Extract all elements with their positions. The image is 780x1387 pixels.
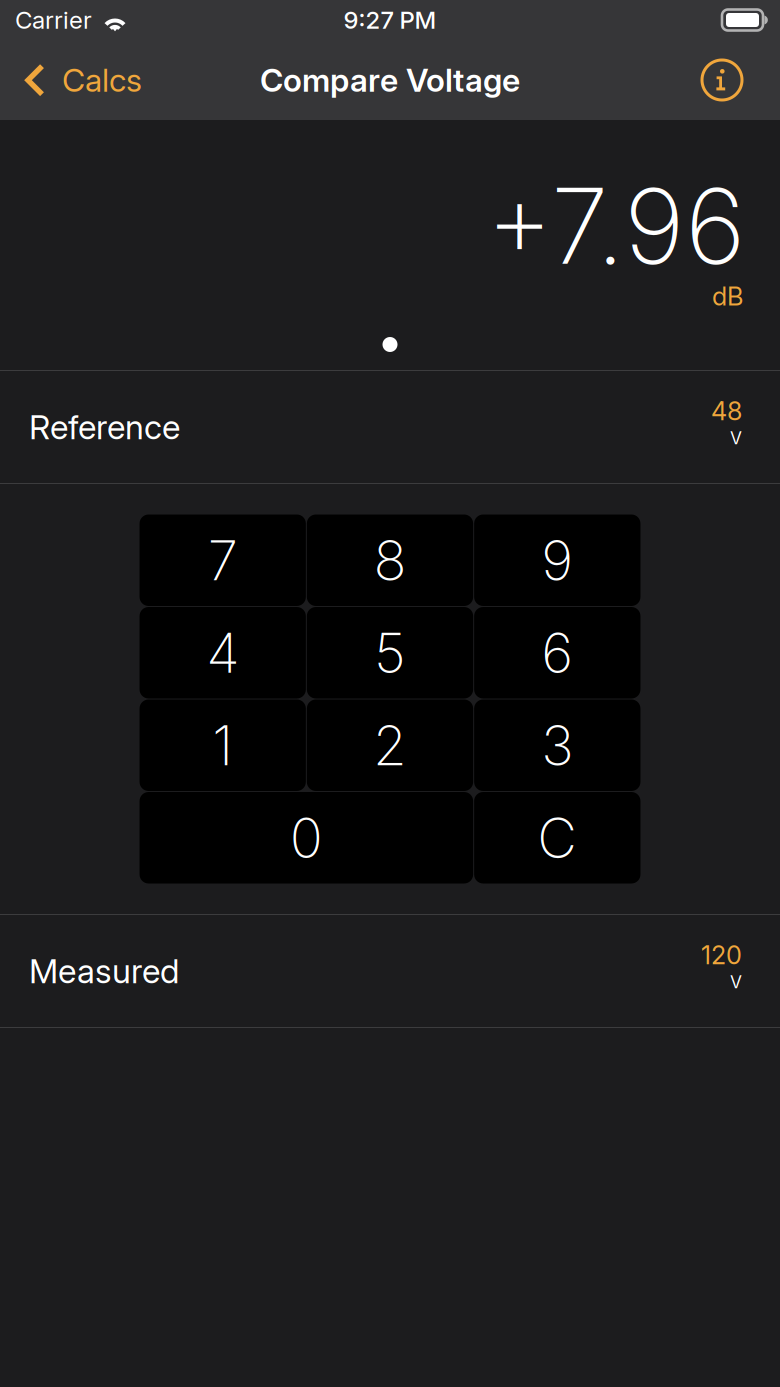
button[interactable]: 0: [139, 792, 473, 883]
staticText: Reference: [29, 407, 180, 447]
button[interactable]: 1: [139, 699, 306, 791]
staticText: C: [537, 805, 577, 871]
staticText: 3: [541, 712, 573, 778]
staticText: 48: [711, 396, 742, 426]
staticText: dB: [712, 281, 743, 311]
button[interactable]: 7: [139, 514, 306, 606]
staticText: 0: [290, 805, 323, 871]
staticText: 1: [212, 712, 233, 778]
staticText: 5: [374, 620, 406, 686]
staticText: V: [730, 427, 742, 448]
staticText: Measured: [29, 951, 179, 991]
button[interactable]: Info: [700, 40, 762, 120]
button[interactable]: 4: [139, 607, 306, 698]
staticText: 9: [541, 527, 573, 593]
button[interactable]: Calcs: [0, 40, 156, 120]
staticText: 8: [373, 527, 406, 593]
staticText: 120: [701, 940, 742, 970]
button[interactable]: 8: [307, 514, 473, 606]
staticText: 6: [541, 620, 573, 686]
staticText: 2: [373, 712, 407, 778]
button[interactable]: Reference: [0, 371, 780, 483]
staticText: Carrier: [15, 5, 92, 34]
button[interactable]: 5: [307, 607, 473, 698]
button[interactable]: 3: [474, 699, 640, 791]
button[interactable]: C: [474, 792, 640, 883]
button[interactable]: 2: [307, 699, 473, 791]
staticText: V: [730, 971, 742, 992]
staticText: +7.96: [486, 163, 746, 289]
button[interactable]: 6: [474, 607, 640, 698]
staticText: 4: [206, 620, 239, 686]
staticText: Compare Voltage: [260, 61, 520, 99]
button[interactable]: Measured: [0, 915, 780, 1027]
staticText: Calcs: [62, 61, 142, 99]
staticText: 9:27 PM: [343, 5, 436, 34]
staticText: 7: [208, 527, 238, 593]
button[interactable]: 9: [474, 514, 640, 606]
